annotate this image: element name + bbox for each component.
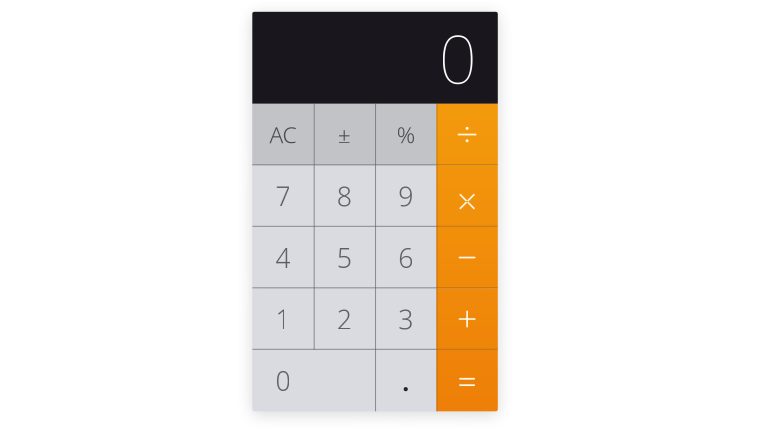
button[interactable]: 9 [375,165,436,227]
staticText: % [397,119,415,150]
button[interactable]: 3 [375,288,436,350]
staticText: 5 [337,240,352,275]
button[interactable]: Equals [436,350,498,411]
staticText: 3 [398,301,413,337]
button[interactable]: 5 [314,227,375,288]
staticText: 4 [275,240,290,275]
button[interactable]: 1 [252,288,314,350]
staticText: 0 [439,13,477,102]
button[interactable]: Multiply [436,165,498,227]
button[interactable]: Divide [436,104,498,165]
button[interactable]: % [375,104,436,165]
button[interactable]: 0 [252,350,375,411]
staticText: AC [269,119,296,150]
button[interactable]: 8 [314,165,375,227]
button[interactable]: ± [314,104,375,165]
button[interactable]: 6 [375,227,436,288]
staticText: 1 [275,301,290,337]
button[interactable]: 7 [252,165,314,227]
staticText: ± [338,119,351,150]
button[interactable]: 4 [252,227,314,288]
button[interactable]: Add [436,288,498,350]
staticText: 8 [337,178,352,214]
button[interactable]: 2 [314,288,375,350]
button[interactable]: Decimal point [375,350,436,411]
staticText: 7 [275,178,290,214]
staticText: 0 [275,363,290,398]
button[interactable]: Subtract [436,227,498,288]
staticText: 2 [337,301,352,337]
staticText: 6 [398,240,413,275]
button[interactable]: AC [252,104,314,165]
staticText: 9 [398,178,413,214]
